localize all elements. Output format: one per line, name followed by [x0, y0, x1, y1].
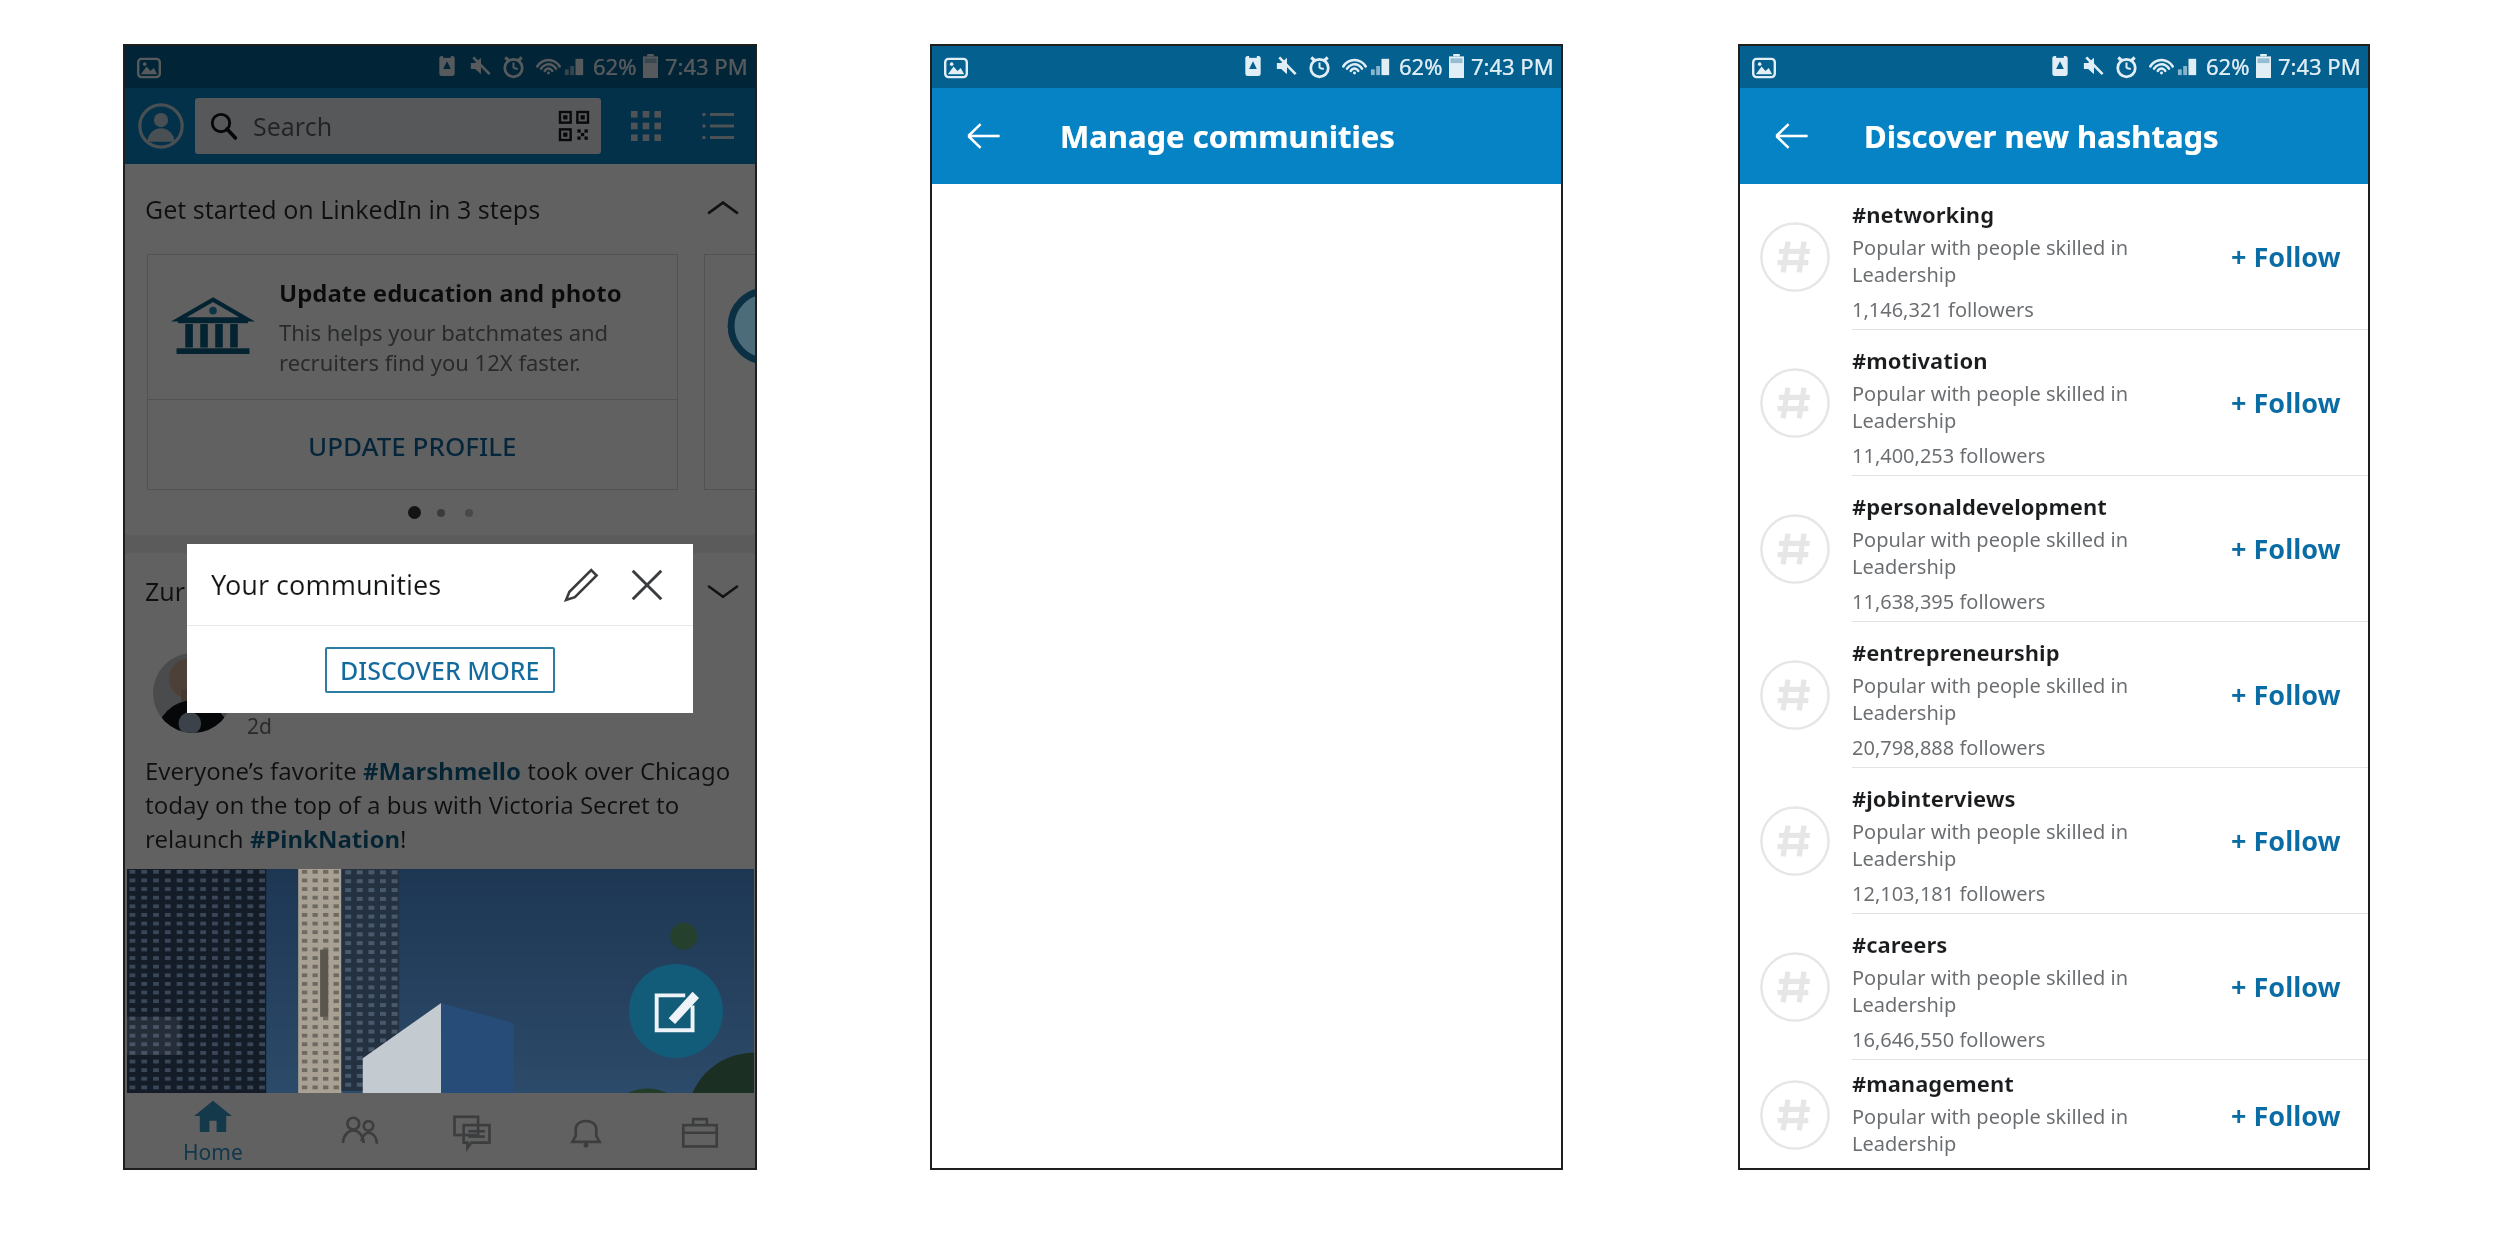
staticText: Popular with people skilled in: [1852, 1103, 2129, 1130]
staticText: #networking: [1852, 199, 1995, 229]
staticText: #management: [1852, 1068, 2014, 1098]
button[interactable]: + Follow: [2202, 330, 2370, 475]
staticText: #motivation: [1852, 345, 1988, 375]
button[interactable]: Close: [621, 559, 673, 611]
button[interactable]: Menu: [695, 103, 741, 149]
staticText: Leadership: [1852, 553, 1957, 580]
staticText: 1,146,321 followers: [1852, 296, 2034, 323]
staticText: + Follow: [2231, 676, 2341, 713]
staticText: Popular with people skilled in: [1852, 964, 2129, 991]
button[interactable]: UPDATE PROFILE: [147, 400, 678, 490]
staticText: 12,103,181 followers: [1852, 880, 2046, 907]
staticText: 62%: [2206, 51, 2250, 81]
button[interactable]: + Follow: [2202, 184, 2370, 329]
staticText: + Follow: [2231, 384, 2341, 421]
button[interactable]: #jobinterviews: [1738, 768, 2370, 914]
staticText: Popular with people skilled in: [1852, 380, 2129, 407]
button[interactable]: Write a post: [629, 964, 723, 1058]
button[interactable]: My Network: [302, 1093, 415, 1170]
button[interactable]: #careers: [1738, 914, 2370, 1060]
staticText: Zuri Hammond: [145, 574, 324, 608]
staticText: Update education and photo: [279, 276, 622, 309]
button[interactable]: #motivation: [1738, 330, 2370, 476]
staticText: Leadership: [1852, 407, 1957, 434]
staticText: + Follow: [2231, 530, 2341, 567]
staticText: 62%: [1399, 51, 1443, 81]
staticText: Leadership: [1852, 1130, 1957, 1157]
staticText: #jobinterviews: [1852, 783, 2016, 813]
button[interactable]: Collapse: [701, 187, 745, 231]
staticText: Zuri Hammond commented on this: [247, 661, 595, 690]
staticText: This helps your batchmates and: [279, 317, 609, 347]
staticText: Leadership: [1852, 845, 1957, 872]
staticText: Everyone’s favorite #Marshmello took ove…: [145, 754, 751, 855]
staticText: 7:43 PM: [1471, 51, 1554, 81]
staticText: Home: [183, 1138, 243, 1167]
staticText: #careers: [1852, 929, 1948, 959]
staticText: 7:43 PM: [2278, 51, 2361, 81]
staticText: Discover new hashtags: [1864, 115, 2219, 157]
staticText: 62%: [593, 51, 637, 81]
staticText: 7:43 PM: [665, 51, 748, 81]
button[interactable]: Messaging: [415, 1093, 529, 1170]
staticText: + Follow: [2231, 822, 2341, 859]
button[interactable]: + Follow: [2202, 914, 2370, 1059]
staticText: Popular with people skilled in: [1852, 526, 2129, 553]
button[interactable]: DISCOVER MORE: [325, 647, 555, 693]
staticText: #entrepreneurship: [1852, 637, 2060, 667]
button[interactable]: + Follow: [2202, 768, 2370, 913]
staticText: 22,858,509 followers: [1852, 1165, 2046, 1170]
staticText: + Follow: [2231, 968, 2341, 1005]
staticText: Popular with people skilled in: [1852, 234, 2129, 261]
button[interactable]: Profile: [135, 100, 187, 152]
staticText: 20,798,888 followers: [1852, 734, 2046, 761]
button[interactable]: #networking: [1738, 184, 2370, 330]
staticText: + Follow: [2231, 1097, 2341, 1134]
staticText: Popular with people skilled in: [1852, 672, 2129, 699]
button[interactable]: Home: [123, 1093, 302, 1170]
staticText: 11,400,253 followers: [1852, 442, 2046, 469]
staticText: UPDATE PROFILE: [308, 428, 517, 463]
button[interactable]: #personaldevelopment: [1738, 476, 2370, 622]
staticText: Get started on LinkedIn in 3 steps: [145, 192, 541, 226]
staticText: Leadership: [1852, 261, 1957, 288]
button[interactable]: #management: [1738, 1060, 2370, 1170]
button[interactable]: + Follow: [2202, 1060, 2370, 1170]
staticText: Manage communities: [1060, 115, 1395, 157]
staticText: + Follow: [2231, 238, 2341, 275]
button[interactable]: + Follow: [2202, 622, 2370, 767]
staticText: #personaldevelopment: [1852, 491, 2107, 521]
button[interactable]: Back: [956, 108, 1012, 164]
button[interactable]: Notifications: [529, 1093, 643, 1170]
button[interactable]: Apps: [623, 103, 669, 149]
staticText: Search: [253, 109, 333, 143]
button[interactable]: Back: [1764, 108, 1820, 164]
button[interactable]: + Follow: [2202, 476, 2370, 621]
button[interactable]: Search: [195, 98, 601, 154]
button[interactable]: #entrepreneurship: [1738, 622, 2370, 768]
staticText: Leadership: [1852, 991, 1957, 1018]
staticText: Popular with people skilled in: [1852, 818, 2129, 845]
staticText: 16,646,550 followers: [1852, 1026, 2046, 1053]
staticText: Your communities: [211, 566, 442, 603]
staticText: DISCOVER MORE: [340, 653, 540, 687]
button[interactable]: Jobs: [643, 1093, 757, 1170]
staticText: Leadership: [1852, 699, 1957, 726]
staticText: 2d: [247, 712, 272, 741]
staticText: recruiters find you 12X faster.: [279, 347, 581, 377]
button[interactable]: Edit: [555, 559, 607, 611]
button[interactable]: More options: [701, 569, 745, 613]
staticText: 11,638,395 followers: [1852, 588, 2046, 615]
